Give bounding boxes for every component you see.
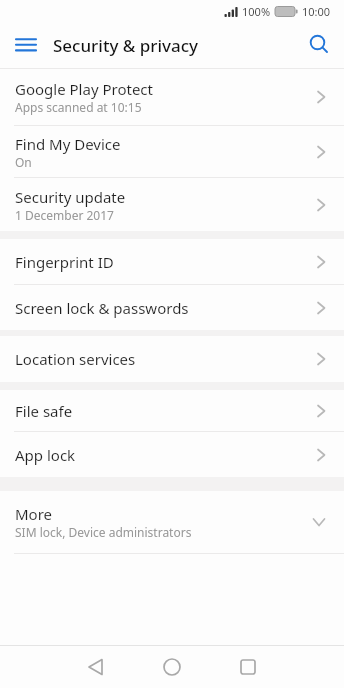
staticText: Google Play Protect <box>15 79 153 99</box>
button[interactable]: Security update <box>0 178 344 231</box>
staticText: 100% <box>242 4 271 19</box>
button[interactable] <box>84 655 108 679</box>
button[interactable]: Location services <box>0 336 344 382</box>
button[interactable]: Find My Device <box>0 126 344 177</box>
button[interactable]: More <box>0 491 344 553</box>
staticText: More <box>15 504 53 524</box>
staticText: Fingerprint ID <box>15 252 114 272</box>
button[interactable]: Fingerprint ID <box>0 239 344 284</box>
button[interactable]: Screen lock & passwords <box>0 285 344 330</box>
staticText: 10:00 <box>302 4 331 19</box>
button[interactable] <box>236 655 260 679</box>
button[interactable] <box>160 655 184 679</box>
staticText: Apps scanned at 10:15 <box>15 99 142 115</box>
staticText: SIM lock, Device administrators <box>15 524 192 540</box>
staticText: File safe <box>15 401 73 421</box>
button[interactable] <box>16 38 36 52</box>
staticText: Screen lock & passwords <box>15 298 189 318</box>
button[interactable]: App lock <box>0 432 344 477</box>
button[interactable] <box>308 34 330 56</box>
button[interactable]: Google Play Protect <box>0 69 344 125</box>
staticText: Location services <box>15 349 136 369</box>
staticText: 1 December 2017 <box>15 207 114 223</box>
staticText: Find My Device <box>15 134 121 154</box>
staticText: Security & privacy <box>53 34 199 57</box>
staticText: App lock <box>15 445 76 465</box>
button[interactable]: File safe <box>0 390 344 431</box>
staticText: On <box>15 154 32 170</box>
staticText: Security update <box>15 187 126 207</box>
